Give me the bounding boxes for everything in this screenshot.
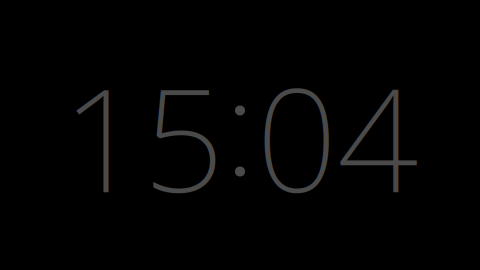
staticText: 04 xyxy=(256,40,418,234)
staticText: 15 xyxy=(62,40,224,234)
